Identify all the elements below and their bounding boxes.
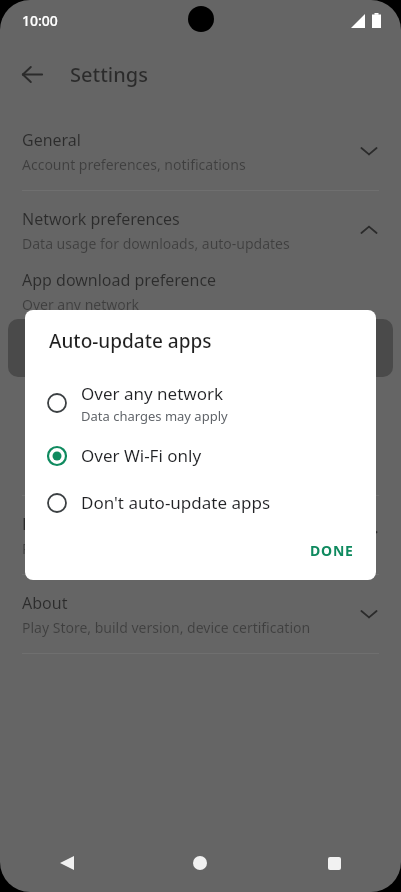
staticText: Over any network [22,295,139,314]
staticText: Auto-update apps [49,328,212,354]
button[interactable]: Back [0,834,133,892]
staticText: About [22,592,68,614]
button[interactable]: General [0,112,401,190]
staticText: DONE [310,541,354,560]
button[interactable]: Recent apps [267,834,401,892]
button[interactable]: DONE [300,535,364,566]
staticText: App download preference [22,269,217,291]
staticText: Data usage for downloads, auto-updates [22,234,290,253]
button[interactable]: Family [0,496,401,574]
staticText: Parental control, parent guide [22,539,219,558]
button[interactable]: Network preferences [0,191,401,269]
button[interactable]: Don't auto-update apps [25,479,376,526]
staticText: Family [22,513,71,535]
staticText: Over Wi-Fi only [81,444,202,467]
staticText: Data charges may apply [81,407,228,425]
staticText: Network preferences [22,208,180,230]
button[interactable]: Over Wi-Fi only [25,432,376,479]
staticText: Settings [70,61,148,88]
staticText: Don't auto-update apps [81,491,271,514]
button[interactable]: About [0,575,401,653]
staticText: Play Store, build version, device certif… [22,618,311,637]
button[interactable]: App download preference [0,269,401,319]
staticText: General [22,129,81,151]
button[interactable]: Back [10,52,54,96]
staticText: 10:00 [22,11,58,30]
button[interactable]: Home [133,834,267,892]
button[interactable]: Over any network [25,374,376,432]
button[interactable] [8,319,393,377]
staticText: Account preferences, notifications [22,155,246,174]
staticText: Over any network [81,382,224,405]
